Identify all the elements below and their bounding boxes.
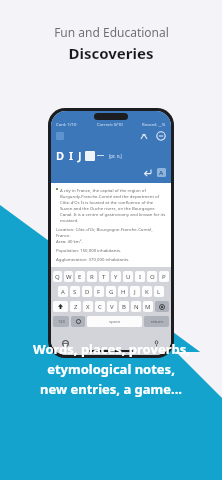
staticText: U — [126, 273, 131, 281]
button[interactable]: U — [123, 271, 133, 282]
button[interactable]: I — [135, 271, 145, 282]
button[interactable]: Key — [53, 301, 68, 312]
staticText: T — [102, 273, 106, 281]
staticText: Z — [74, 303, 78, 311]
button[interactable]: R — [87, 271, 97, 282]
button[interactable]: V — [107, 301, 117, 312]
staticText: Card: 1/10 — [56, 122, 77, 128]
staticText: Q — [55, 273, 60, 281]
button[interactable]: Y — [111, 271, 121, 282]
button[interactable]: Close — [156, 131, 166, 141]
button[interactable]: Key — [155, 301, 169, 312]
staticText: etymological notes, — [47, 360, 175, 378]
button[interactable]: O — [147, 271, 157, 282]
staticText: O — [150, 273, 155, 281]
staticText: F — [97, 288, 101, 296]
button[interactable]: Key — [87, 316, 142, 327]
staticText: Fun and Educational — [54, 24, 169, 40]
staticText: 123 — [58, 319, 65, 324]
staticText: D — [85, 288, 90, 296]
staticText: space — [109, 319, 121, 325]
button[interactable]: D — [82, 286, 92, 297]
button[interactable]: D — [56, 148, 65, 163]
staticText: P — [162, 273, 166, 281]
staticText: S — [73, 288, 77, 296]
staticText: V — [110, 303, 114, 311]
button[interactable]: Text size — [140, 131, 150, 141]
staticText: E — [78, 273, 82, 281]
button[interactable]: Change language — [62, 340, 69, 347]
button[interactable]: K — [142, 286, 152, 297]
staticText: L — [157, 288, 161, 296]
staticText: return — [151, 319, 163, 324]
button[interactable]: S — [70, 286, 80, 297]
staticText: Location: Côte-d'Or, Bourgogne-Franche-C… — [56, 226, 166, 238]
staticText: C — [98, 303, 102, 311]
button[interactable]: Submit — [143, 168, 152, 177]
button[interactable]: Z — [70, 301, 81, 312]
staticText: A — [61, 288, 65, 296]
button[interactable]: A — [58, 286, 68, 297]
button[interactable]: Dictate — [153, 340, 160, 347]
staticText: H — [121, 288, 126, 296]
button[interactable]: W — [64, 271, 73, 282]
staticText: G — [109, 288, 114, 296]
button[interactable]: J — [78, 148, 82, 163]
staticText: N — [134, 303, 139, 311]
staticText: X — [86, 303, 90, 311]
staticText: Agglomeration: 370,000 inhabitants. — [56, 256, 130, 262]
staticText: W — [66, 273, 72, 281]
button[interactable]: J — [130, 286, 140, 297]
button[interactable]: Keyboard — [157, 168, 166, 177]
staticText: B — [122, 303, 126, 311]
staticText: Population: 150,000 inhabitants. — [56, 247, 122, 253]
button[interactable]: H — [118, 286, 128, 297]
button[interactable]: I — [69, 148, 74, 163]
button[interactable]: N — [131, 301, 141, 312]
button[interactable]: L — [154, 286, 164, 297]
staticText: new entries, a game... — [40, 380, 182, 398]
staticText: Discoveries — [68, 43, 154, 63]
button[interactable]: C — [95, 301, 105, 312]
staticText: Area: 40 km². — [56, 238, 83, 244]
button[interactable]: B — [119, 301, 129, 312]
staticText: Y — [114, 273, 118, 281]
button[interactable]: T — [99, 271, 109, 282]
staticText: A — [159, 169, 164, 177]
staticText: K — [145, 288, 149, 296]
button[interactable]: E — [75, 271, 85, 282]
staticText: (pr. n.) — [109, 153, 122, 159]
button[interactable]: Key — [144, 316, 169, 327]
staticText: Record: __% — [142, 122, 166, 128]
button[interactable]: Key — [71, 316, 85, 327]
staticText: R — [90, 273, 94, 281]
staticText: I — [139, 273, 142, 281]
button[interactable]: F — [94, 286, 104, 297]
button[interactable] — [85, 151, 95, 161]
button[interactable]: P — [159, 271, 169, 282]
button[interactable]: G — [106, 286, 116, 297]
staticText: J — [134, 288, 136, 296]
button[interactable]: X — [83, 301, 93, 312]
staticText: A city in France, the capital of the reg… — [60, 187, 166, 223]
button[interactable]: M — [143, 301, 153, 312]
staticText: Words, places, proverbs, — [33, 340, 190, 358]
staticText: Correct: 0/10 — [97, 122, 123, 128]
staticText: M — [145, 303, 151, 311]
button[interactable]: Q — [53, 271, 62, 282]
button[interactable]: Key — [53, 316, 69, 327]
